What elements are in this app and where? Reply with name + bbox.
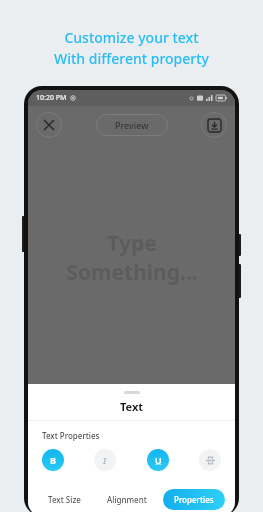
staticText: Text Properties (42, 430, 100, 441)
staticText: Text Size (48, 494, 81, 505)
staticText: U (155, 454, 162, 466)
staticText: Properties (174, 494, 214, 505)
staticText: Type (107, 229, 157, 258)
staticText: Alignment (107, 494, 147, 505)
button[interactable]: Strikethrough (199, 449, 221, 471)
button[interactable]: Italic (94, 449, 116, 471)
button[interactable]: Save (201, 112, 227, 138)
staticText: B (50, 454, 56, 466)
staticText: With different property (54, 49, 209, 68)
button[interactable]: Alignment (97, 490, 157, 509)
staticText: Customize your text (64, 28, 199, 47)
staticText: Something... (66, 258, 198, 287)
button[interactable]: Text Size (38, 490, 91, 509)
button[interactable]: Preview (96, 114, 168, 136)
staticText: 10:20 PM (36, 93, 67, 103)
button[interactable]: Properties (163, 489, 225, 510)
button[interactable]: Underline (147, 449, 169, 471)
staticText: I (103, 454, 107, 466)
button[interactable]: Bold (42, 449, 64, 471)
staticText: Preview (115, 119, 149, 131)
button[interactable]: Close (36, 112, 62, 138)
staticText: Text (120, 399, 144, 414)
